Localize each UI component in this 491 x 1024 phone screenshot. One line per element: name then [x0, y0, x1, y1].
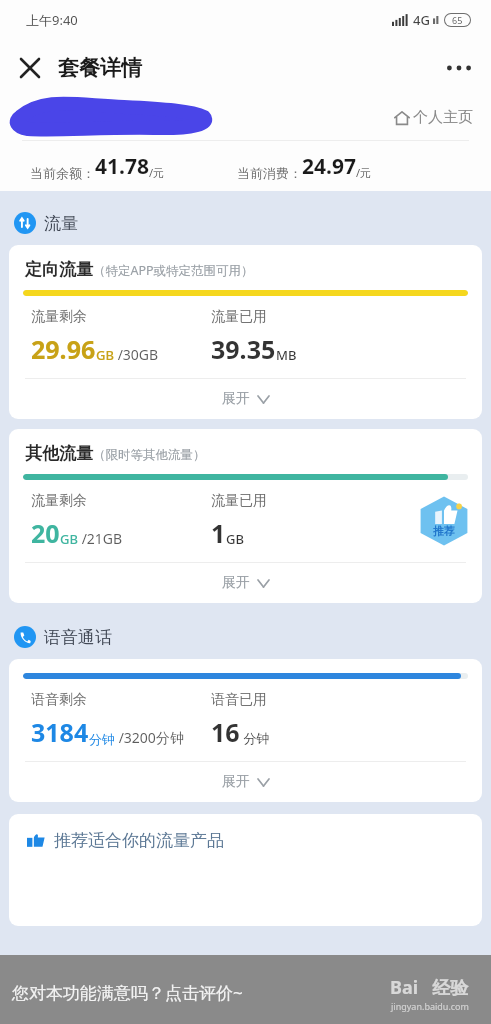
staticText: jingyan.baidu.com	[391, 1000, 469, 1012]
staticText: 1	[211, 516, 226, 550]
staticText: 您对本功能满意吗？点击评价~	[12, 981, 243, 1004]
staticText: 定向流量	[25, 259, 93, 280]
staticText: MB	[276, 346, 297, 364]
staticText: 当前消费：	[237, 165, 302, 181]
staticText: 推荐	[433, 524, 455, 538]
staticText: GB	[226, 530, 244, 548]
staticText: /21GB	[78, 529, 123, 548]
staticText: 套餐详情	[58, 55, 142, 81]
staticText: 推荐适合你的流量产品	[54, 830, 224, 851]
staticText: GB	[60, 530, 78, 548]
button[interactable]: 展开	[9, 762, 482, 802]
staticText: 语音通话	[44, 627, 112, 648]
staticText: GB	[96, 346, 114, 364]
staticText: 24.97	[302, 152, 356, 181]
button[interactable]: 展开	[9, 563, 482, 603]
staticText: 流量已用	[211, 492, 267, 510]
staticText: 展开	[222, 390, 250, 408]
staticText: （限时等其他流量）	[93, 447, 206, 463]
staticText: 展开	[222, 574, 250, 592]
staticText: Bai 经验	[390, 975, 469, 1000]
button[interactable]: 推荐	[418, 495, 470, 547]
staticText: 41.78	[95, 152, 149, 181]
staticText: 语音已用	[211, 691, 267, 709]
button[interactable]: 展开	[9, 379, 482, 419]
staticText: 流量已用	[211, 308, 267, 326]
button[interactable]: Close	[8, 46, 52, 90]
staticText: 分钟	[89, 731, 115, 747]
staticText: 65	[452, 14, 463, 26]
staticText: /元	[356, 165, 372, 180]
staticText: （特定APP或特定范围可用）	[93, 262, 254, 279]
staticText: 4G	[413, 11, 430, 29]
button[interactable]: More options	[437, 46, 481, 90]
staticText: 上午9:40	[26, 11, 78, 29]
staticText: 分钟	[240, 729, 270, 747]
staticText: 16	[211, 715, 240, 749]
staticText: 39.35	[211, 332, 276, 366]
staticText: 3184	[31, 715, 89, 749]
staticText: 29.96	[31, 332, 96, 366]
staticText: 流量剩余	[31, 492, 87, 510]
staticText: 流量	[44, 213, 78, 234]
staticText: /元	[149, 165, 165, 180]
staticText: 当前余额：	[30, 165, 95, 181]
staticText: /3200分钟	[115, 728, 184, 747]
staticText: /30GB	[114, 345, 159, 364]
staticText: 流量剩余	[31, 308, 87, 326]
button[interactable]: 推荐适合你的流量产品	[27, 814, 482, 866]
staticText: 语音剩余	[31, 691, 87, 709]
staticText: 其他流量	[25, 443, 93, 464]
staticText: 20	[31, 516, 60, 550]
staticText: 展开	[222, 773, 250, 791]
staticText: 个人主页	[413, 108, 473, 127]
button[interactable]: 个人主页	[394, 108, 473, 127]
